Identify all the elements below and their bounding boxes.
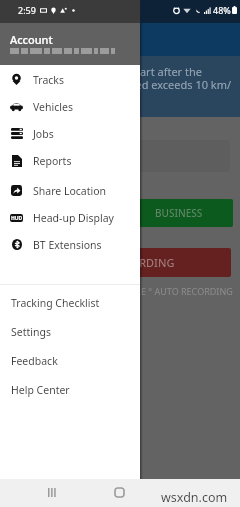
button[interactable]: BUSINESS (124, 199, 233, 227)
staticText: SWIPE LEFT TO DISABLE ° AUTO RECORDING (45, 285, 233, 297)
staticText: Feedback (11, 354, 58, 368)
button[interactable]: Settings (0, 317, 140, 346)
staticText: Help Center (11, 383, 70, 397)
staticText: 48% (213, 4, 231, 16)
button[interactable]: Help Center (0, 375, 140, 404)
button[interactable]: Recent apps (38, 479, 66, 507)
staticText: Head-up Display (33, 211, 114, 225)
staticText: Account (10, 32, 53, 47)
button[interactable]: Share Location (0, 177, 140, 204)
button[interactable]: HUD (0, 204, 140, 231)
button[interactable]: Home (105, 479, 133, 507)
button[interactable]: Vehicles (0, 93, 140, 120)
staticText: Settings (11, 325, 51, 339)
button[interactable]: Jobs (0, 120, 140, 147)
staticText: travelling speed exceeds 10 km/ (66, 77, 232, 92)
button[interactable]: BT Extensions (0, 231, 140, 258)
staticText: 2:59 (18, 4, 36, 16)
staticText: Jobs (33, 127, 54, 141)
staticText: Reports (33, 154, 72, 168)
button[interactable]: Feedback (0, 346, 140, 375)
staticText: BUSINESS (155, 206, 203, 220)
staticText: wsxdn.com (161, 489, 228, 506)
button[interactable]: Tracking Checklist (0, 288, 140, 317)
button[interactable]: Reports (0, 147, 140, 174)
button[interactable] (8, 199, 120, 227)
staticText: Tracking Checklist (11, 296, 100, 310)
button[interactable]: Tracks (0, 66, 140, 93)
staticText: BT Extensions (33, 238, 102, 252)
staticText: Tracks (33, 73, 65, 87)
button[interactable]: START RECORDING (20, 248, 231, 277)
staticText: HUD (11, 215, 23, 222)
staticText: Automatic recording will start after the (2, 64, 202, 79)
staticText: Share Location (33, 184, 107, 198)
staticText: START RECORDING (76, 255, 175, 270)
staticText: Vehicles (33, 100, 73, 114)
